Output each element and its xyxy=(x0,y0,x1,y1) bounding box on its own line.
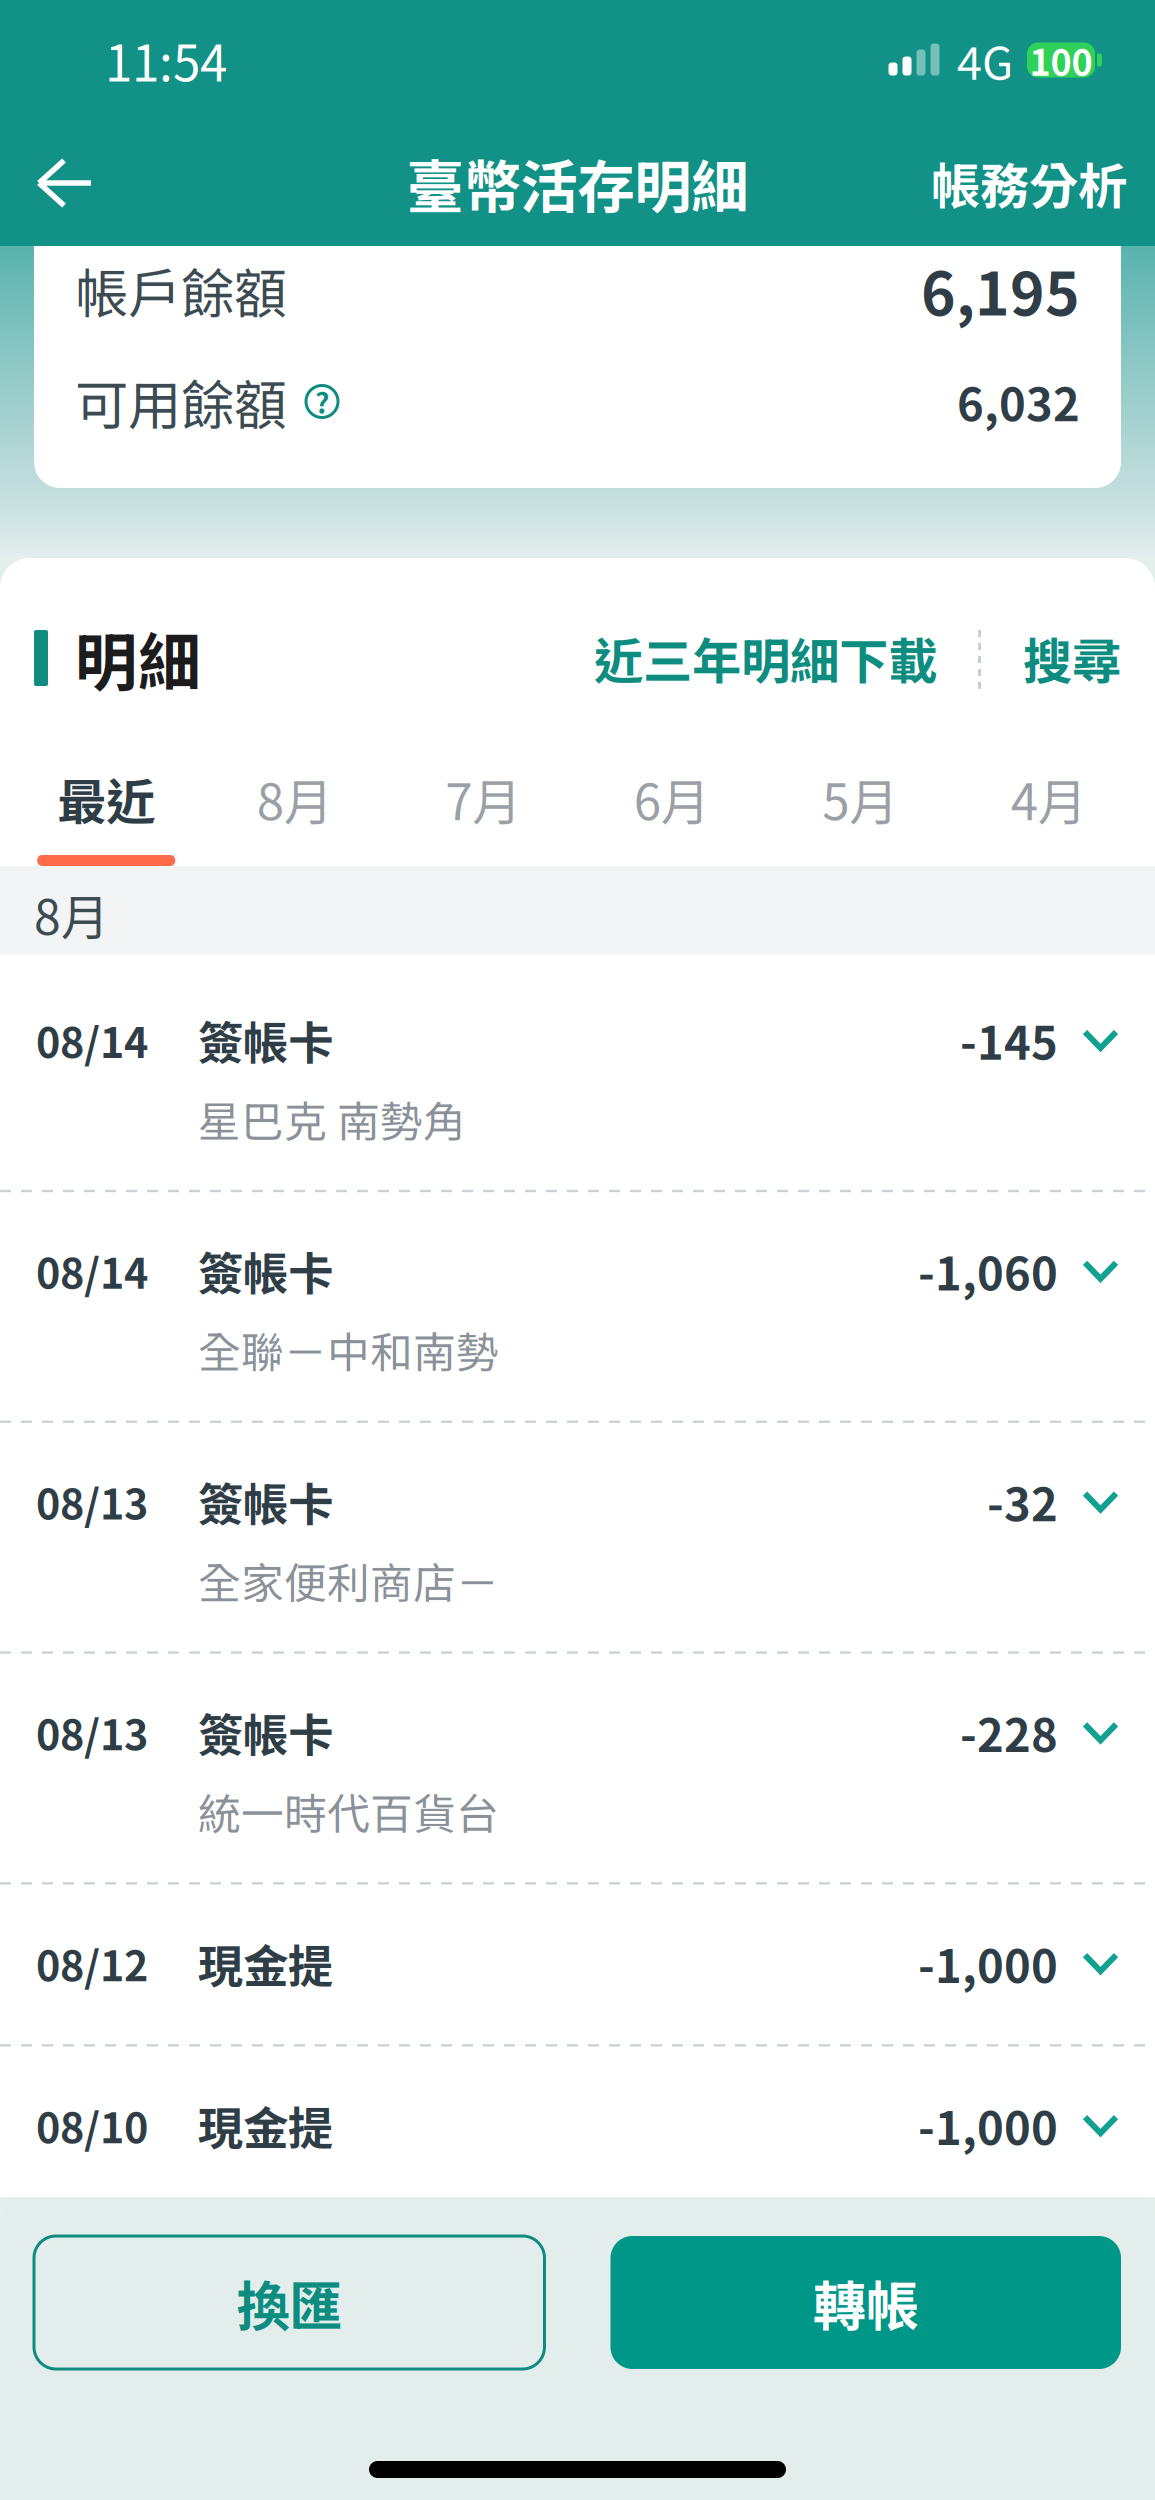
staticText: 全聯－中和南勢 xyxy=(198,1319,499,1381)
staticText: 08/13 xyxy=(36,1702,148,1762)
staticText: 最近 xyxy=(57,763,155,834)
staticText: 星巴克 南勢角 xyxy=(198,1088,466,1150)
staticText: 簽帳卡 xyxy=(198,1469,333,1534)
staticText: 搜尋 xyxy=(1023,622,1121,694)
staticText: 4月 xyxy=(1011,763,1087,834)
button[interactable]: 搜尋 xyxy=(1023,622,1121,694)
button[interactable]: 最近 xyxy=(12,758,200,866)
staticText: 8月 xyxy=(34,879,109,949)
staticText: -1,060 xyxy=(918,1238,1058,1304)
staticText: -1,000 xyxy=(918,1930,1058,1996)
staticText: 近三年明細下載 xyxy=(594,622,937,694)
button[interactable]: 5月 xyxy=(766,758,954,866)
button[interactable]: 7月 xyxy=(389,758,577,866)
staticText: 7月 xyxy=(445,763,521,834)
staticText: 11:54 xyxy=(105,24,227,96)
staticText: -145 xyxy=(960,1007,1058,1073)
button[interactable]: 返回 xyxy=(28,135,128,230)
button[interactable]: 轉帳 xyxy=(610,2236,1121,2369)
staticText: 100 xyxy=(1029,34,1092,86)
button[interactable]: 4月 xyxy=(954,758,1143,866)
staticText: -32 xyxy=(987,1469,1058,1534)
staticText: 換匯 xyxy=(236,2264,342,2341)
staticText: 5月 xyxy=(822,763,898,834)
button[interactable]: 近三年明細下載 xyxy=(594,622,937,694)
staticText: 6月 xyxy=(634,763,710,834)
button[interactable]: 換匯 xyxy=(34,2236,544,2369)
staticText: 統一時代百貨台 xyxy=(198,1780,499,1842)
staticText: 現金提 xyxy=(198,1930,333,1996)
staticText: 可用餘額 xyxy=(75,363,287,440)
staticText: 簽帳卡 xyxy=(198,1238,333,1304)
staticText: 簽帳卡 xyxy=(198,1699,333,1765)
button[interactable]: 6月 xyxy=(577,758,766,866)
staticText: 明細 xyxy=(75,613,201,703)
staticText: 6,195 xyxy=(921,247,1080,332)
staticText: 08/10 xyxy=(36,2095,148,2155)
staticText: 帳務分析 xyxy=(931,147,1127,219)
button[interactable]: 08/13 xyxy=(0,1654,1155,1882)
staticText: 6,032 xyxy=(957,369,1080,434)
staticText: 現金提 xyxy=(198,2092,333,2158)
button[interactable]: 8月 xyxy=(200,758,389,866)
staticText: 帳戶餘額 xyxy=(75,251,287,329)
staticText: 臺幣活存明細 xyxy=(406,141,748,224)
staticText: 全家便利商店－ xyxy=(198,1550,499,1611)
staticText: -1,000 xyxy=(918,2092,1058,2158)
staticText: -228 xyxy=(960,1699,1058,1765)
staticText: 8月 xyxy=(257,763,333,834)
button[interactable]: 08/13 xyxy=(0,1424,1155,1651)
button[interactable]: 08/10 xyxy=(0,2047,1155,2206)
staticText: 08/14 xyxy=(36,1010,148,1070)
button[interactable]: 08/14 xyxy=(0,1193,1155,1421)
staticText: 4G xyxy=(957,27,1013,93)
staticText: ? xyxy=(315,381,329,422)
staticText: 簽帳卡 xyxy=(198,1007,333,1073)
button[interactable]: 08/14 xyxy=(0,954,1155,1190)
button[interactable]: 08/12 xyxy=(0,1885,1155,2044)
staticText: 08/13 xyxy=(36,1472,148,1531)
staticText: 08/14 xyxy=(36,1241,148,1301)
button[interactable]: 帳務分析 xyxy=(931,125,1127,241)
staticText: 08/12 xyxy=(36,1933,148,1993)
staticText: 轉帳 xyxy=(813,2264,919,2341)
